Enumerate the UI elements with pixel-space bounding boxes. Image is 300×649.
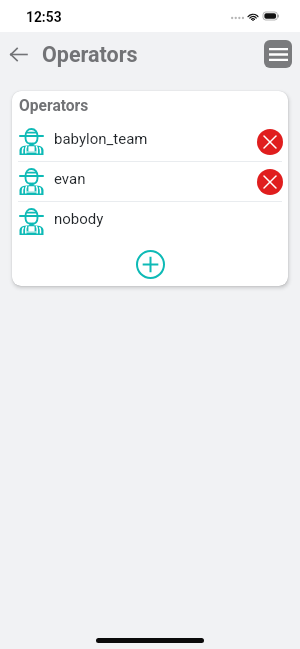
button[interactable]: Back: [2, 38, 34, 70]
staticText: Operators: [42, 42, 138, 67]
button[interactable]: nobody: [12, 202, 288, 242]
staticText: evan: [54, 170, 86, 188]
button[interactable]: Add operator: [133, 247, 167, 281]
staticText: babylon_team: [54, 130, 148, 148]
button[interactable]: Remove babylon_team: [257, 129, 283, 155]
button[interactable]: Menu: [264, 40, 292, 68]
button[interactable]: evan: [12, 162, 288, 202]
staticText: 12:53: [26, 9, 62, 25]
staticText: nobody: [54, 210, 104, 228]
staticText: Operators: [19, 97, 89, 115]
button[interactable]: Remove evan: [257, 169, 283, 195]
button[interactable]: babylon_team: [12, 122, 288, 162]
